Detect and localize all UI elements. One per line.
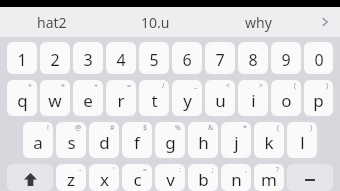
staticText: hat2 [37,13,67,32]
staticText: z [67,168,75,191]
button[interactable]: & [188,122,218,158]
button[interactable]: = [106,80,136,116]
staticText: p [313,89,324,112]
staticText: 8 [248,49,258,71]
staticText: 7 [215,49,225,71]
staticText: ; [212,165,214,175]
staticText: & [208,123,214,133]
staticText: e [83,89,93,112]
staticText: ) [326,81,329,91]
staticText: * [243,123,247,133]
staticText: x [100,168,109,191]
button[interactable]: ? [254,164,284,191]
button[interactable]: hat2 [0,7,104,37]
staticText: a [33,131,43,154]
staticText: , [245,165,247,175]
staticText: h [198,131,209,154]
staticText: l [300,131,305,154]
staticText: < [226,81,231,91]
staticText: 10.u [141,13,170,32]
button[interactable]: - [56,164,86,191]
button[interactable]: ; [188,164,218,191]
button[interactable]: 3 [73,42,103,74]
staticText: ? [276,165,280,175]
staticText: @ [75,123,82,133]
staticText: / [162,81,165,91]
button[interactable]: ) [304,80,333,116]
staticText: m [261,168,277,191]
staticText: - [79,165,82,175]
staticText: r [117,89,125,112]
staticText: 9 [281,49,291,71]
staticText: ( [294,81,297,91]
staticText: f [134,131,140,154]
staticText: ' [113,165,115,175]
staticText: 3 [83,49,93,71]
button[interactable]: 4 [106,42,136,74]
staticText: i [251,89,256,112]
staticText: t [151,89,158,112]
staticText: = [143,165,148,175]
staticText: s [67,131,76,154]
staticText: o [281,89,292,112]
button[interactable]: 8 [238,42,268,74]
staticText: why [245,13,272,32]
button[interactable]: # [89,122,119,158]
button[interactable]: 9 [271,42,301,74]
button[interactable]: Shift [7,164,53,191]
staticText: × [61,81,66,91]
button[interactable]: + [7,80,37,116]
staticText: : [179,165,181,175]
button[interactable]: = [122,164,152,191]
button[interactable]: 1 [7,42,37,74]
button[interactable]: < [205,80,235,116]
button[interactable]: @ [56,122,86,158]
button[interactable]: * [221,122,251,158]
staticText: d [99,131,110,154]
staticText: c [133,168,142,191]
staticText: > [259,81,264,91]
button[interactable]: , [221,164,251,191]
button[interactable]: 10.u [104,7,207,37]
button[interactable]: More suggestions [310,7,340,37]
staticText: ( [277,123,280,133]
button[interactable]: / [139,80,169,116]
staticText: v [166,168,175,191]
staticText: 2 [50,49,60,71]
staticText: ) [310,123,313,133]
staticText: g [165,131,176,154]
staticText: 0 [314,49,324,71]
staticText: 5 [149,49,159,71]
button[interactable]: 6 [172,42,202,74]
staticText: # [110,123,115,133]
button[interactable]: ' [89,164,119,191]
button[interactable]: $ [122,122,152,158]
button[interactable]: ( [254,122,284,158]
button[interactable]: 0 [304,42,333,74]
button[interactable]: _ [172,80,202,116]
button[interactable]: why [207,7,310,37]
button[interactable]: 2 [40,42,70,74]
staticText: ! [47,123,49,133]
button[interactable]: × [40,80,70,116]
button[interactable]: 5 [139,42,169,74]
staticText: 4 [116,49,126,71]
button[interactable]: ! [23,122,53,158]
button[interactable]: ) [287,122,317,158]
staticText: _ [194,81,198,91]
button[interactable]: ( [271,80,301,116]
button[interactable]: % [155,122,185,158]
button[interactable]: : [155,164,185,191]
staticText: $ [143,123,148,133]
staticText: % [175,123,181,133]
button[interactable]: > [238,80,268,116]
staticText: q [17,89,28,112]
staticText: + [28,81,33,91]
staticText: w [48,89,62,112]
button[interactable]: Backspace [287,164,333,191]
staticText: u [215,89,226,112]
button[interactable]: ÷ [73,80,103,116]
staticText: 6 [182,49,192,71]
button[interactable]: 7 [205,42,235,74]
staticText: k [264,131,274,154]
